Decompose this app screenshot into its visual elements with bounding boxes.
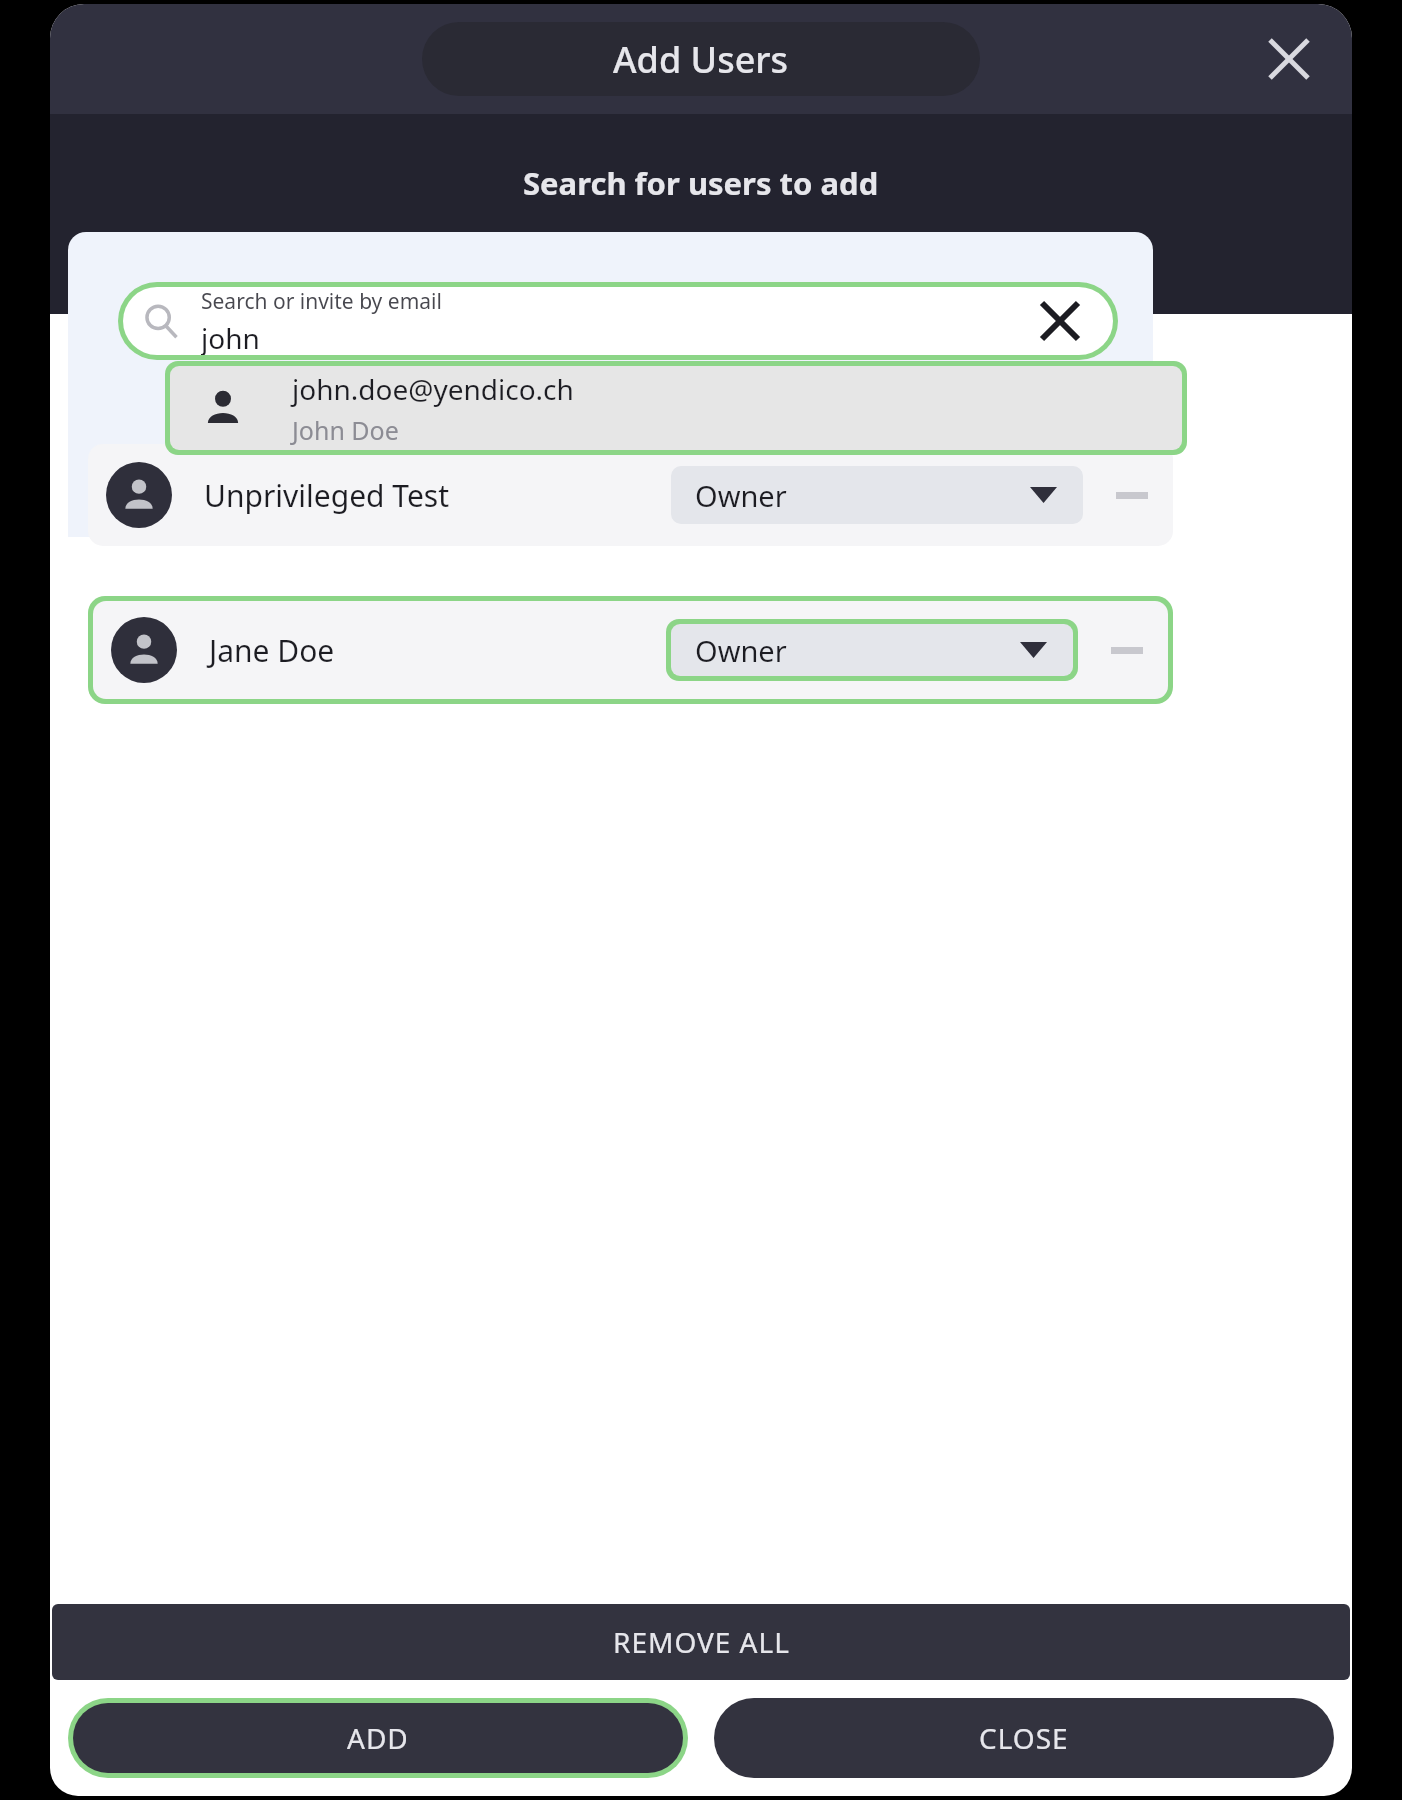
button[interactable]: Search or invite by email <box>118 282 1118 360</box>
button[interactable]: john.doe@yendico.ch <box>165 361 1187 455</box>
staticText: Search or invite by email <box>201 287 442 316</box>
staticText: REMOVE ALL <box>613 1623 790 1661</box>
button[interactable]: Add Users <box>422 22 980 96</box>
button[interactable]: REMOVE ALL <box>52 1604 1350 1680</box>
button[interactable]: ADD <box>68 1698 688 1778</box>
staticText: Search for users to add <box>523 162 879 204</box>
button[interactable]: Clear search <box>1031 292 1089 350</box>
staticText: Owner <box>695 476 787 515</box>
button[interactable]: Remove user <box>1103 466 1161 524</box>
staticText: Unprivileged Test <box>204 475 671 516</box>
staticText: ADD <box>347 1719 409 1757</box>
staticText: CLOSE <box>979 1719 1069 1757</box>
staticText: john.doe@yendico.ch <box>292 370 574 408</box>
button[interactable]: Close <box>1252 22 1326 96</box>
staticText: John Doe <box>292 413 399 447</box>
staticText: Add Users <box>613 35 789 84</box>
button[interactable]: Owner <box>666 619 1078 681</box>
button[interactable]: Unprivileged Test <box>88 444 1173 546</box>
staticText: Jane Doe <box>209 630 666 671</box>
staticText: john <box>201 319 260 355</box>
button[interactable]: Jane Doe <box>93 601 1168 699</box>
staticText: Owner <box>695 631 787 670</box>
button[interactable]: Remove user <box>1098 621 1156 679</box>
button[interactable]: CLOSE <box>714 1698 1334 1778</box>
button[interactable]: Owner <box>671 466 1083 524</box>
